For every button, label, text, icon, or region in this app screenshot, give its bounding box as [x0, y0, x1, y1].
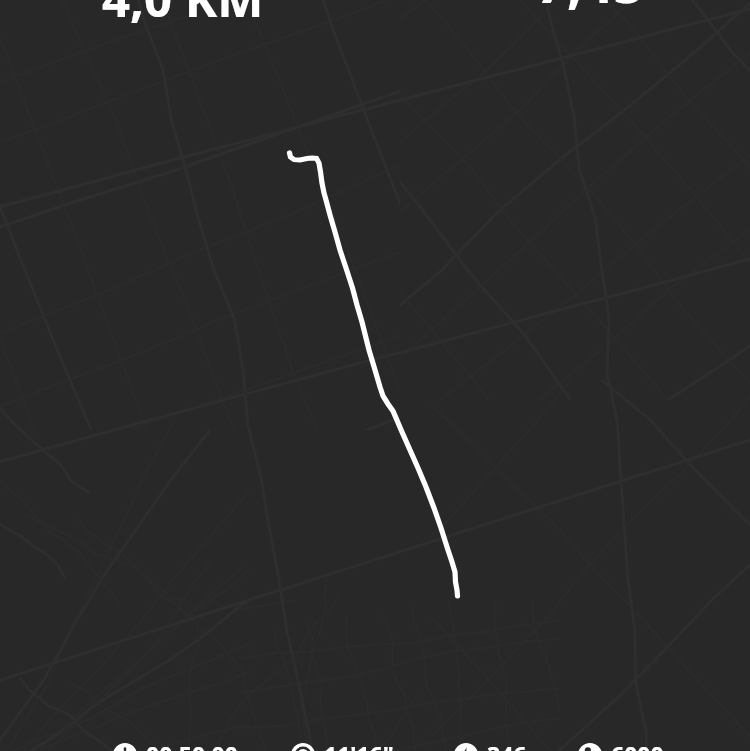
button[interactable]: Steps	[578, 739, 664, 751]
staticText: 6000	[611, 739, 664, 751]
button[interactable]: 4,0 KM	[33, 0, 333, 32]
button[interactable]: 7,45"	[453, 0, 750, 19]
button[interactable]: Calories	[454, 739, 527, 751]
staticText: 00:50:00	[146, 739, 238, 751]
staticText: 7,45"	[536, 0, 670, 19]
button[interactable]: Duration	[113, 739, 238, 751]
button[interactable]: Run route map	[0, 0, 750, 751]
staticText: 11'16"	[324, 739, 394, 751]
staticText: 4,0 KM	[102, 0, 264, 32]
staticText: 346	[487, 739, 527, 751]
button[interactable]: Average pace	[291, 739, 394, 751]
